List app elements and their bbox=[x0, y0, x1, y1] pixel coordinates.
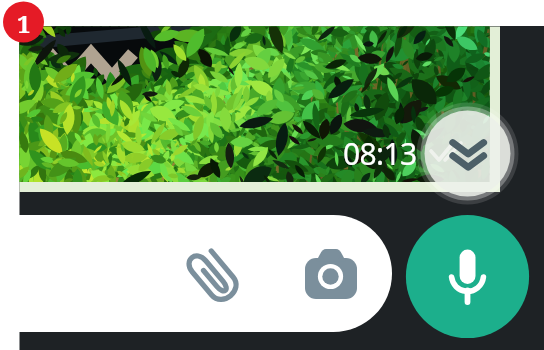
staticText: 08:13 bbox=[343, 133, 417, 174]
button[interactable]: Attach bbox=[186, 248, 242, 304]
button[interactable]: Scroll to bottom bbox=[424, 112, 508, 196]
button[interactable]: Voice message bbox=[406, 214, 530, 338]
button[interactable]: Camera bbox=[303, 248, 359, 304]
staticText: 1 bbox=[17, 7, 31, 40]
